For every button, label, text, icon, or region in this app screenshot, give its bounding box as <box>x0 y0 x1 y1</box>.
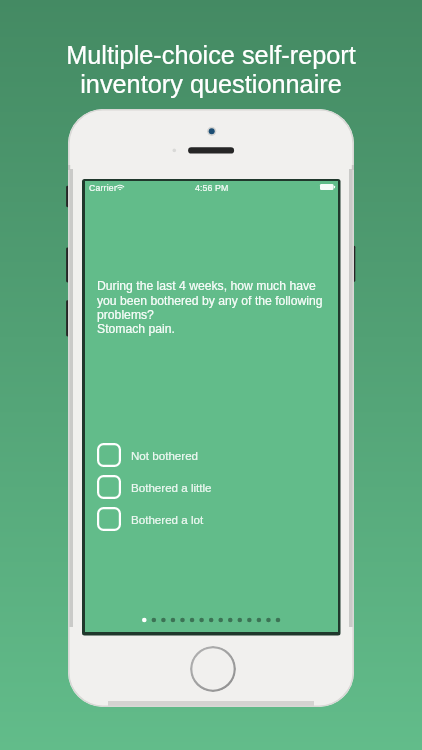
staticText: Multiple-choice self-report inventory qu… <box>0 41 422 98</box>
staticText: Not bothered <box>131 449 199 462</box>
staticText: During the last 4 weeks, how much have y… <box>97 279 323 335</box>
button[interactable]: Bothered a lot <box>97 507 204 531</box>
staticText: Bothered a little <box>131 481 212 494</box>
button[interactable]: Bothered a little <box>97 475 212 499</box>
staticText: 4:56 PM <box>195 183 229 193</box>
button[interactable]: Not bothered <box>97 443 199 467</box>
staticText: Carrier <box>89 183 118 193</box>
staticText: Bothered a lot <box>131 513 204 526</box>
button[interactable]: Home <box>190 646 236 692</box>
